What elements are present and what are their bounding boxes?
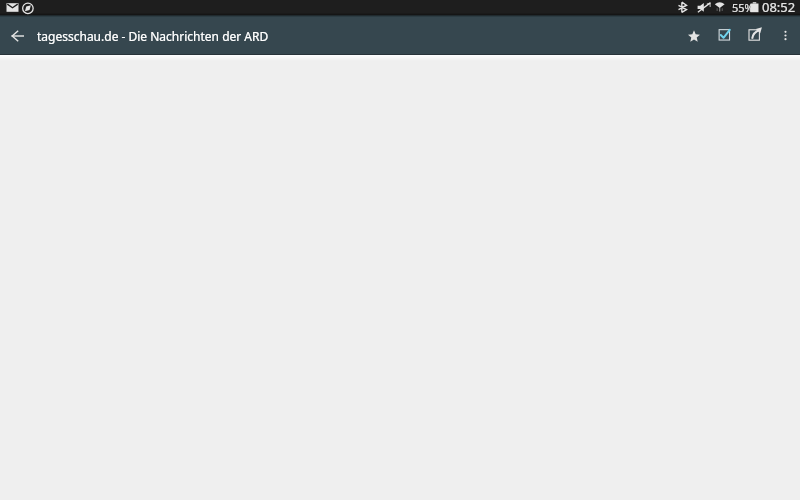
staticText: 08:52 <box>762 0 796 15</box>
button[interactable]: More options <box>770 17 800 54</box>
button[interactable]: Navigate up <box>3 17 33 54</box>
staticText: 55% <box>732 0 754 15</box>
button[interactable]: Share page <box>740 17 770 54</box>
staticText: tagesschau.de - Die Nachrichten der ARD <box>37 28 269 44</box>
button[interactable]: Bookmark <box>680 17 710 54</box>
button[interactable]: Add to reading list <box>710 17 740 54</box>
